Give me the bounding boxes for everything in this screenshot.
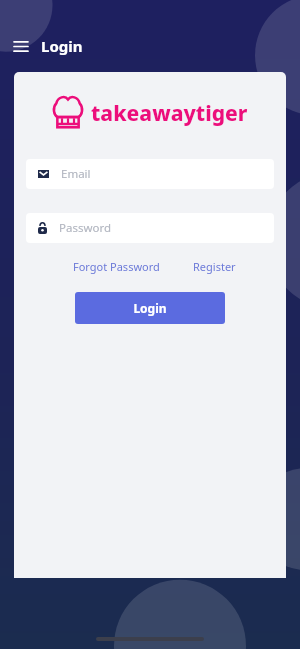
staticText: Login	[133, 300, 167, 316]
staticText: Register	[193, 259, 236, 274]
staticText: takeawaytiger	[91, 99, 248, 128]
staticText: Login	[41, 36, 83, 56]
button[interactable]: Email	[26, 159, 274, 189]
button[interactable]: Login	[75, 292, 225, 324]
button[interactable]: Menu	[10, 35, 32, 57]
button[interactable]: Forgot Password	[73, 259, 160, 274]
button[interactable]: Register	[193, 259, 236, 274]
staticText: Forgot Password	[73, 259, 160, 274]
button[interactable]: Password	[26, 213, 274, 243]
staticText: Password	[59, 220, 112, 236]
staticText: Email	[61, 166, 91, 182]
